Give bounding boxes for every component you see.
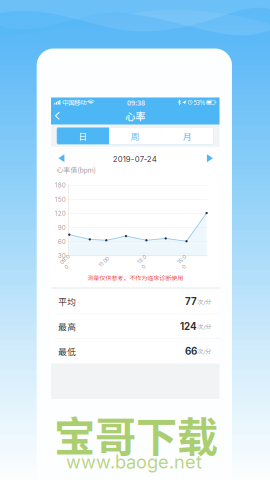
staticText: 2019-07-24 [113,154,157,164]
staticText: 最高 [58,320,76,333]
staticText: www.baoge.net [66,451,202,473]
staticText: 66 [185,345,197,357]
staticText: 09:38 [127,97,145,107]
staticText: 13:00 [139,255,149,268]
button[interactable]: 最低 [51,339,219,363]
staticText: 周 [131,129,140,142]
staticText: 180 [55,181,66,189]
staticText: 30 [58,252,66,260]
staticText: 测量仅供参考，不作为临床诊断使用 [87,273,183,282]
staticText: 次/分 [197,347,211,355]
staticText: 60 [58,238,66,245]
button[interactable]: 最高 [51,314,219,338]
staticText: 宝哥下载 [54,404,218,464]
button[interactable]: 平均 [51,289,219,314]
staticText: 150 [55,196,66,203]
button[interactable]: 周 [109,127,161,144]
staticText: 09:00 [61,255,72,268]
button[interactable]: 日 [57,127,109,144]
staticText: 53% [194,98,206,107]
staticText: 最低 [58,345,76,357]
staticText: 中国移动 [62,98,86,107]
staticText: 心率 [125,108,145,123]
staticText: 次/分 [197,322,211,331]
button[interactable]: Previous day [51,147,69,165]
staticText: 15:00 [179,255,189,268]
button[interactable]: Back [51,107,64,124]
staticText: 77 [185,296,197,307]
staticText: 心率值(bpm) [57,165,96,175]
button[interactable]: 月 [161,127,214,144]
staticText: 次/分 [197,297,211,306]
staticText: 平均 [58,295,76,308]
staticText: 日 [78,129,87,142]
button[interactable]: Next day [202,147,219,165]
staticText: 90 [58,224,66,231]
staticText: 120 [55,210,66,217]
staticText: 124 [180,320,197,332]
staticText: 11:00 [98,259,110,265]
staticText: 月 [183,129,192,142]
